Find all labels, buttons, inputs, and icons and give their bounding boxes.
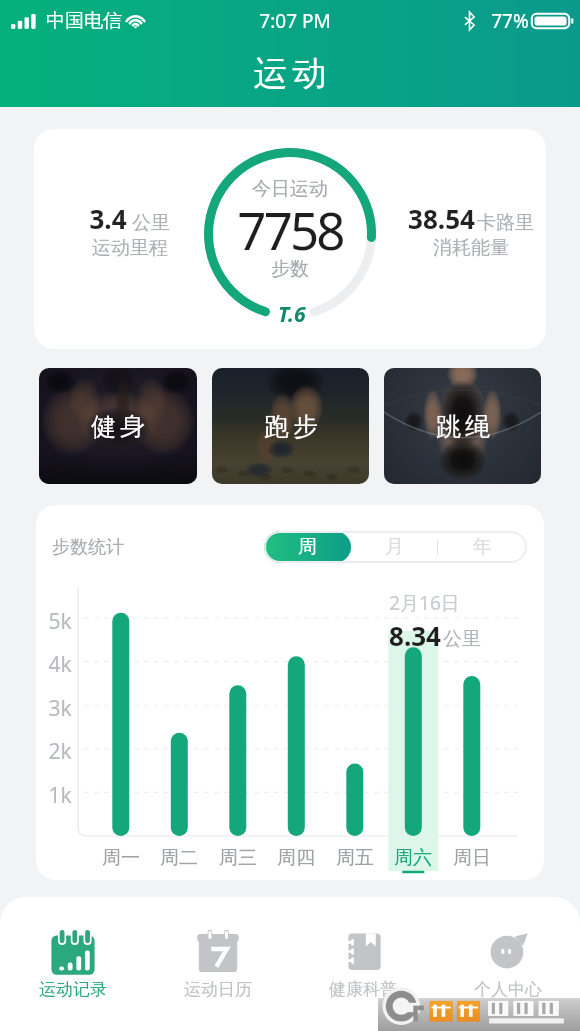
staticText: 跑步 <box>262 411 320 442</box>
staticText: 周六 <box>394 846 432 870</box>
button[interactable]: 健身 <box>39 368 197 484</box>
button[interactable]: 周 <box>264 531 351 563</box>
other: 个人中心 <box>482 925 534 977</box>
staticText: 周二 <box>160 846 198 870</box>
staticText: 步数统计 <box>52 536 124 559</box>
staticText: T.6 <box>278 300 306 329</box>
button[interactable]: 个人中心 <box>435 925 580 1000</box>
staticText: 月 <box>385 535 404 559</box>
staticText: 年 <box>473 535 492 559</box>
staticText: 个人中心 <box>474 979 542 1000</box>
staticText: 2k <box>48 737 72 766</box>
staticText: 周日 <box>453 846 491 870</box>
button[interactable]: 年 <box>438 531 527 563</box>
staticText: 周三 <box>219 846 257 870</box>
other: Bluetooth <box>464 12 475 30</box>
other: 运动日历 <box>192 925 244 977</box>
button[interactable]: 跳绳 <box>384 368 541 484</box>
staticText: 公里 <box>443 627 481 651</box>
staticText: 77% <box>491 8 529 34</box>
button[interactable]: 运动记录 <box>0 925 145 1000</box>
button[interactable]: 运动日历 <box>145 925 290 1000</box>
staticText: 今日运动 <box>252 177 328 201</box>
staticText: 4k <box>48 650 72 679</box>
staticText: 运动里程 <box>92 236 168 260</box>
other: Wi-Fi <box>125 13 146 29</box>
staticText: 7758 <box>237 195 343 264</box>
staticText: 8.34 <box>389 618 441 653</box>
button[interactable]: 月 <box>351 531 438 563</box>
staticText: 2月16日 <box>389 590 460 616</box>
staticText: 周 <box>298 535 317 559</box>
staticText: 周一 <box>102 846 140 870</box>
staticText: 公里 <box>132 211 170 235</box>
staticText: 跳绳 <box>434 411 492 442</box>
staticText: 中国电信 <box>46 9 122 33</box>
staticText: 38.54 <box>408 201 475 236</box>
staticText: 消耗能量 <box>433 236 509 260</box>
button[interactable]: 健康科普 <box>290 925 435 1000</box>
button[interactable]: 3.4 <box>34 129 546 349</box>
staticText: 周四 <box>277 846 315 870</box>
staticText: 5k <box>48 607 72 636</box>
other: Signal strength <box>11 14 36 29</box>
staticText: 3.4 <box>89 201 127 236</box>
other: 运动记录 <box>47 925 99 977</box>
staticText: 运动 <box>251 52 329 95</box>
staticText: 卡路里 <box>477 211 534 235</box>
staticText: 运动记录 <box>39 979 107 1000</box>
staticText: 周五 <box>336 846 374 870</box>
staticText: 7:07 PM <box>259 8 331 34</box>
staticText: 1k <box>48 781 72 810</box>
staticText: 步数 <box>271 257 309 281</box>
staticText: 运动日历 <box>184 979 252 1000</box>
other: 健康科普 <box>337 925 389 977</box>
staticText: 健身 <box>89 411 147 442</box>
staticText: 3k <box>48 694 72 723</box>
other: Battery 77 percent <box>531 13 573 29</box>
staticText: 健康科普 <box>329 979 397 1000</box>
button[interactable]: 跑步 <box>212 368 369 484</box>
